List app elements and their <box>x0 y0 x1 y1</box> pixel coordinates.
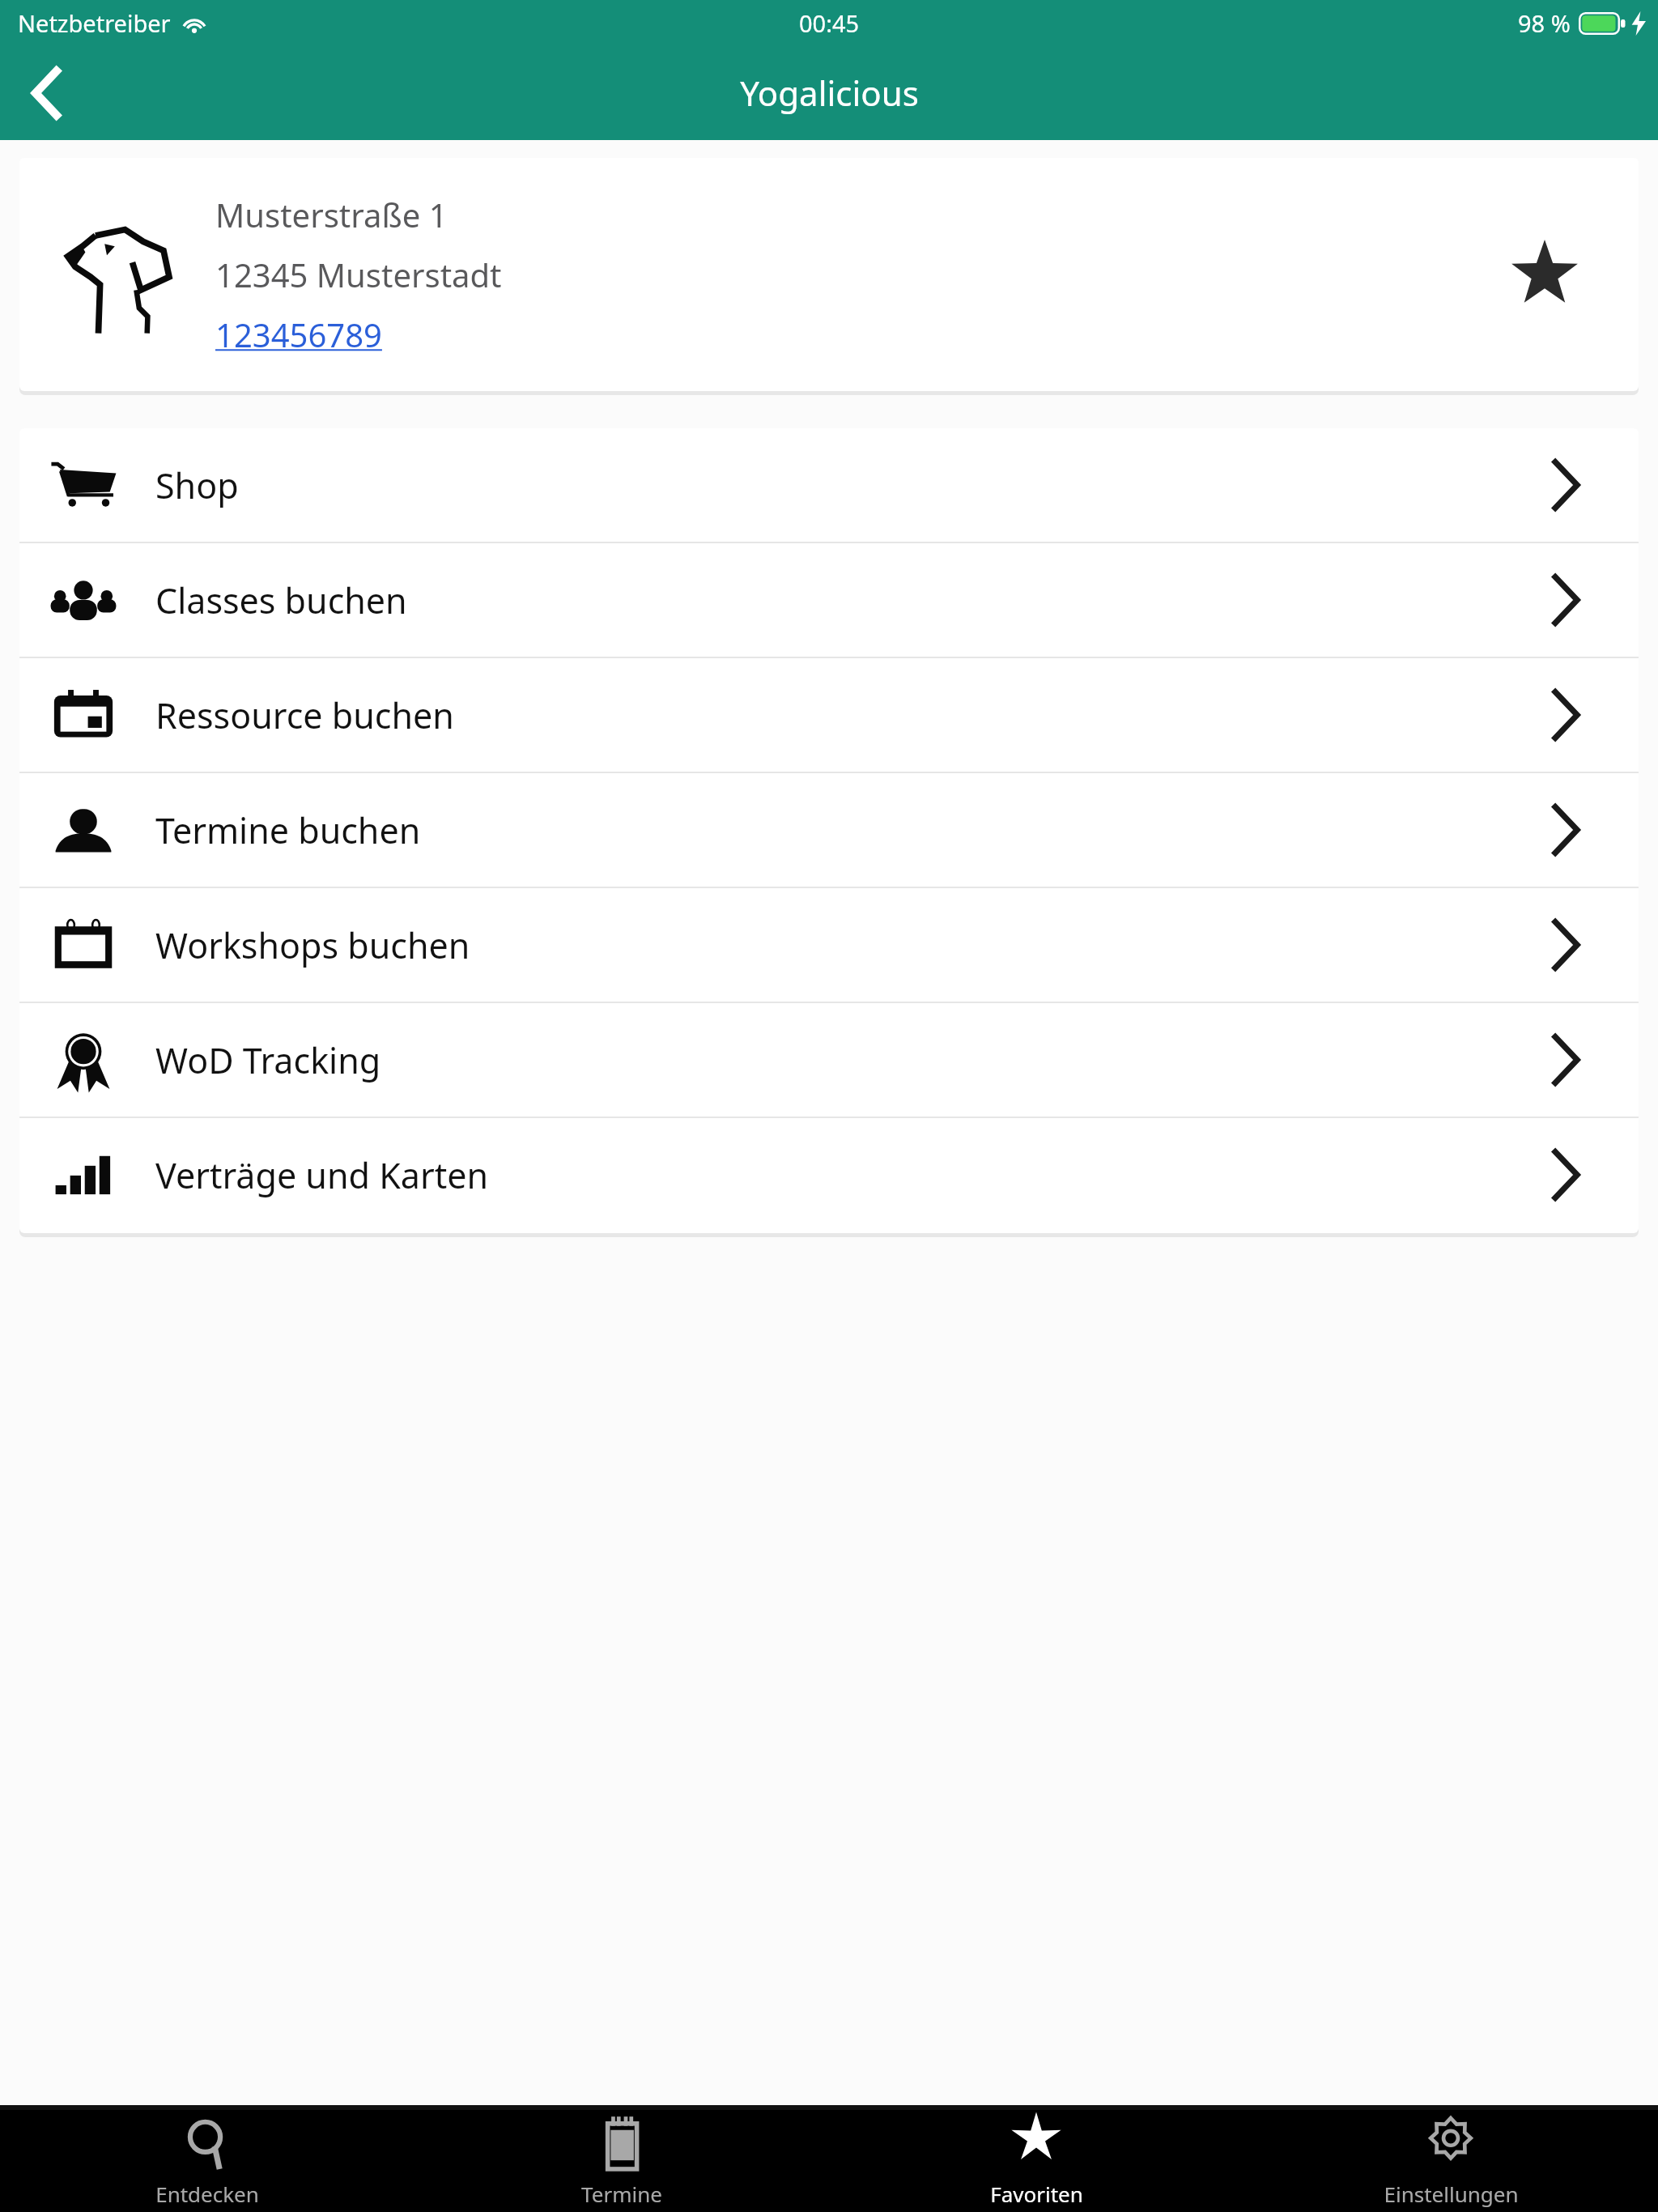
button[interactable]: Termine buchen <box>19 773 1639 887</box>
button[interactable]: Musterstraße 1 <box>19 158 1639 391</box>
button[interactable]: Verträge und Karten <box>19 1118 1639 1231</box>
staticText: WoD Tracking <box>155 1036 381 1084</box>
staticText: Shop <box>155 462 239 509</box>
button[interactable]: Entdecken <box>0 2110 414 2212</box>
button[interactable]: 123456789 <box>215 313 382 356</box>
staticText: Verträge und Karten <box>155 1151 488 1199</box>
staticText: Ressource buchen <box>155 691 454 739</box>
staticText: Workshops buchen <box>155 921 470 969</box>
button[interactable]: Ressource buchen <box>19 658 1639 772</box>
staticText: Netzbetreiber <box>18 7 171 39</box>
staticText: Favoriten <box>990 2180 1083 2208</box>
staticText: Einstellungen <box>1384 2180 1519 2208</box>
staticText: 12345 Musterstadt <box>215 253 502 296</box>
button[interactable]: Favoriten <box>829 2110 1243 2212</box>
button[interactable]: Einstellungen <box>1243 2110 1658 2212</box>
staticText: 00:45 <box>799 7 860 39</box>
button[interactable]: Termine <box>414 2110 829 2212</box>
staticText: 98 % <box>1518 7 1571 39</box>
staticText: Termine buchen <box>155 806 421 854</box>
button[interactable]: Shop <box>19 428 1639 542</box>
staticText: Musterstraße 1 <box>215 193 448 236</box>
staticText: Yogalicious <box>740 70 919 116</box>
staticText: Termine <box>581 2180 662 2208</box>
staticText: Classes buchen <box>155 576 407 624</box>
staticText: Entdecken <box>155 2180 259 2208</box>
button[interactable]: Back <box>0 45 96 140</box>
button[interactable]: WoD Tracking <box>19 1003 1639 1117</box>
button[interactable]: Classes buchen <box>19 543 1639 657</box>
button[interactable]: Workshops buchen <box>19 888 1639 1002</box>
staticText: 123456789 <box>215 313 382 356</box>
button[interactable]: Favorite <box>1504 234 1585 315</box>
